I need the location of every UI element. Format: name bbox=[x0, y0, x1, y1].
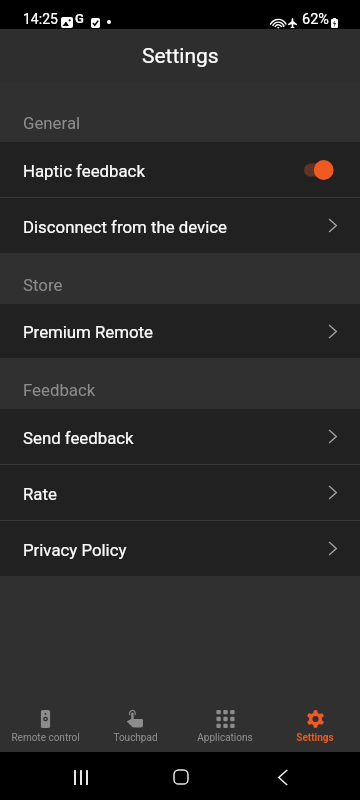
staticText: Touchpad bbox=[113, 732, 158, 744]
button[interactable]: Settings bbox=[270, 699, 360, 752]
staticText: Haptic feedback bbox=[23, 161, 304, 181]
button[interactable]: Remote control bbox=[0, 699, 90, 752]
button[interactable]: Disconnect from the device bbox=[0, 198, 360, 253]
staticText: G bbox=[75, 11, 84, 26]
button[interactable]: Privacy Policy bbox=[0, 521, 360, 576]
button[interactable]: Send feedback bbox=[0, 409, 360, 464]
staticText: Disconnect from the device bbox=[23, 217, 328, 237]
button[interactable]: Rate bbox=[0, 465, 360, 520]
staticText: Settings bbox=[142, 44, 219, 69]
staticText: Rate bbox=[23, 484, 328, 504]
staticText: Settings bbox=[296, 732, 334, 744]
other: Haptic feedback toggle bbox=[304, 160, 337, 180]
button[interactable]: Premium Remote bbox=[0, 304, 360, 358]
button[interactable]: Touchpad bbox=[90, 699, 180, 752]
staticText: Applications bbox=[197, 732, 253, 744]
button[interactable]: Haptic feedback bbox=[0, 142, 360, 197]
staticText: Store bbox=[23, 275, 63, 295]
staticText: Premium Remote bbox=[23, 322, 328, 342]
button[interactable]: Applications bbox=[180, 699, 270, 752]
staticText: 62% bbox=[302, 11, 329, 26]
button[interactable]: Home bbox=[161, 756, 201, 796]
staticText: Privacy Policy bbox=[23, 540, 328, 560]
staticText: Feedback bbox=[23, 380, 96, 400]
button[interactable]: Back bbox=[263, 756, 303, 796]
staticText: General bbox=[23, 113, 81, 133]
staticText: Remote control bbox=[11, 732, 80, 744]
staticText: Send feedback bbox=[23, 428, 328, 448]
staticText: 14:25 bbox=[23, 11, 58, 26]
button[interactable]: Recent apps bbox=[61, 756, 101, 796]
